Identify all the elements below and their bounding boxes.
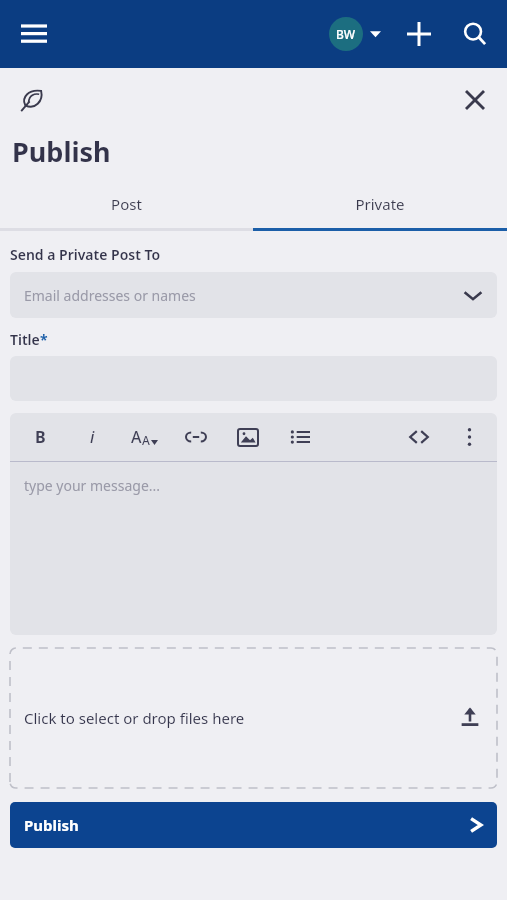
- staticText: *: [40, 330, 48, 349]
- button[interactable]: Menu: [12, 12, 56, 56]
- staticText: A: [142, 432, 150, 448]
- button[interactable]: Click to select or drop files here: [10, 648, 497, 788]
- button[interactable]: Publish: [10, 802, 497, 848]
- staticText: Private: [355, 194, 405, 214]
- button[interactable]: Email addresses or names: [10, 272, 497, 318]
- button[interactable]: Account: [327, 17, 383, 51]
- button[interactable]: Bold: [26, 423, 54, 451]
- button[interactable]: Private: [253, 180, 507, 228]
- staticText: type your message...: [24, 476, 161, 495]
- staticText: Publish: [24, 815, 79, 835]
- button[interactable]: Text size: [130, 423, 158, 451]
- button[interactable]: Close: [455, 80, 495, 120]
- staticText: BW: [336, 26, 356, 42]
- button[interactable]: Post: [0, 180, 253, 228]
- staticText: Publish: [12, 133, 111, 170]
- staticText: i: [90, 426, 95, 448]
- staticText: Title: [10, 330, 40, 349]
- staticText: Send a Private Post To: [10, 245, 161, 264]
- staticText: A: [131, 426, 142, 448]
- button[interactable]: Insert link: [182, 423, 210, 451]
- button[interactable]: Insert image: [234, 423, 262, 451]
- button[interactable]: Italic: [78, 423, 106, 451]
- staticText: Click to select or drop files here: [24, 708, 245, 728]
- staticText: Post: [111, 194, 142, 214]
- button[interactable]: Bulleted list: [286, 423, 314, 451]
- button[interactable]: Compose: [12, 80, 52, 120]
- button[interactable]: type your message...: [10, 462, 497, 635]
- staticText: Email addresses or names: [24, 286, 196, 305]
- button[interactable]: Search: [453, 12, 497, 56]
- button[interactable]: Source code: [405, 423, 433, 451]
- button[interactable]: Create: [397, 12, 441, 56]
- staticText: B: [35, 426, 46, 448]
- button[interactable]: More options: [455, 423, 483, 451]
